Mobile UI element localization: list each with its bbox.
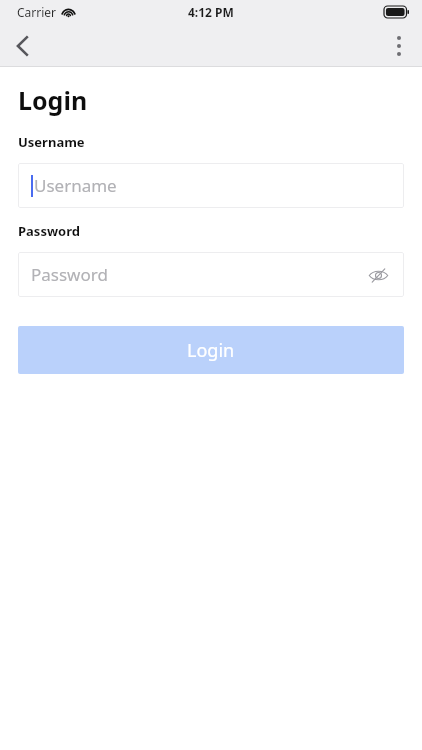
button[interactable]: Username input xyxy=(18,163,404,208)
staticText: Password xyxy=(31,263,108,286)
staticText: Login xyxy=(187,338,235,363)
staticText: Username xyxy=(18,133,85,151)
staticText: Carrier xyxy=(17,4,57,20)
staticText: Login xyxy=(18,83,88,117)
button[interactable]: More options xyxy=(376,24,422,67)
button[interactable]: Password input xyxy=(18,252,404,297)
staticText: 4:12 PM xyxy=(188,4,234,20)
button[interactable]: Show password xyxy=(365,262,391,288)
button[interactable]: Login xyxy=(18,326,404,374)
button[interactable]: Back xyxy=(0,24,46,67)
staticText: Password xyxy=(18,222,80,240)
staticText: Username xyxy=(34,174,117,197)
